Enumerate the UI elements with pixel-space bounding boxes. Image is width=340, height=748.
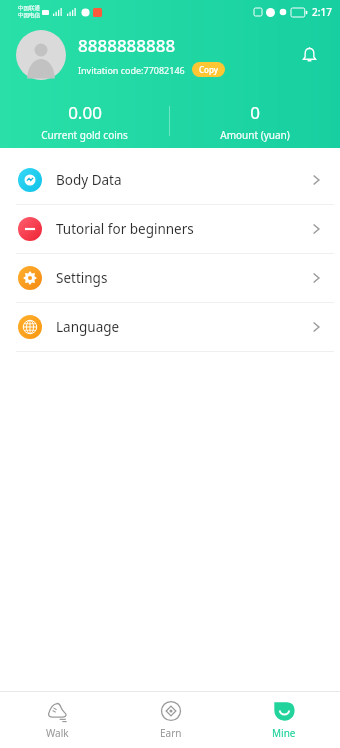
staticText: Mine (272, 726, 296, 740)
button[interactable]: Notifications (292, 38, 326, 72)
staticText: Body Data (56, 171, 308, 189)
staticText: 0.00 (68, 101, 102, 124)
button[interactable]: Walk (0, 692, 114, 748)
staticText: 8888888888 (78, 34, 176, 57)
button[interactable]: Tutorial for beginners (0, 205, 340, 253)
staticText: Copy (199, 64, 218, 75)
staticText: Tutorial for beginners (56, 220, 308, 238)
button[interactable]: Copy (192, 62, 225, 77)
button[interactable]: Earn (114, 692, 227, 748)
staticText: Current gold coins (41, 128, 128, 142)
button[interactable]: Language (0, 303, 340, 351)
staticText: 2:17 (312, 5, 332, 19)
staticText: Walk (46, 726, 69, 740)
staticText: 中国电信 (18, 12, 40, 19)
staticText: 0 (250, 101, 260, 124)
button[interactable]: Mine (227, 692, 340, 748)
staticText: Language (56, 318, 308, 336)
staticText: 中国联通 (18, 5, 40, 12)
button[interactable]: Settings (0, 254, 340, 302)
staticText: Earn (160, 726, 182, 740)
staticText: Amount (yuan) (220, 128, 290, 142)
staticText: Invitation code:77082146 (78, 64, 185, 76)
button[interactable]: Body Data (0, 156, 340, 204)
staticText: Settings (56, 269, 308, 287)
